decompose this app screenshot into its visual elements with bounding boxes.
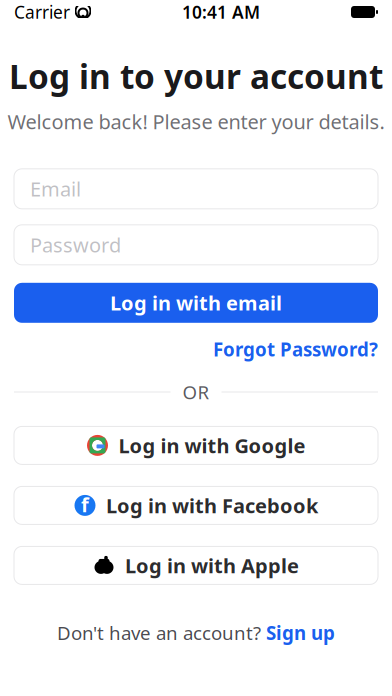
staticText: Carrier [14, 0, 70, 23]
staticText: OR [182, 380, 209, 404]
staticText: Log in with Facebook [106, 492, 318, 519]
staticText: Don't have an account? [57, 620, 261, 645]
button[interactable]: Log in with email [0, 283, 392, 323]
button[interactable]: Forgot Password? [199, 333, 392, 366]
button[interactable]: f [0, 486, 392, 524]
staticText: Forgot Password? [213, 337, 378, 362]
staticText: Log in to your account [9, 54, 383, 98]
staticText: Log in with Apple [125, 552, 299, 579]
staticText: Email [30, 175, 81, 202]
staticText: Sign up [266, 620, 335, 645]
staticText: Log in with email [110, 289, 282, 316]
staticText: Welcome back! Please enter your details. [7, 108, 384, 135]
button[interactable]: Log in with Apple [0, 546, 392, 584]
staticText: Password [30, 231, 121, 258]
staticText: 10:41 AM [182, 0, 260, 23]
button[interactable]: Log in with Google [0, 426, 392, 464]
button[interactable]: Sign up [266, 620, 335, 645]
staticText: f [81, 491, 89, 518]
staticText: Log in with Google [118, 432, 305, 459]
